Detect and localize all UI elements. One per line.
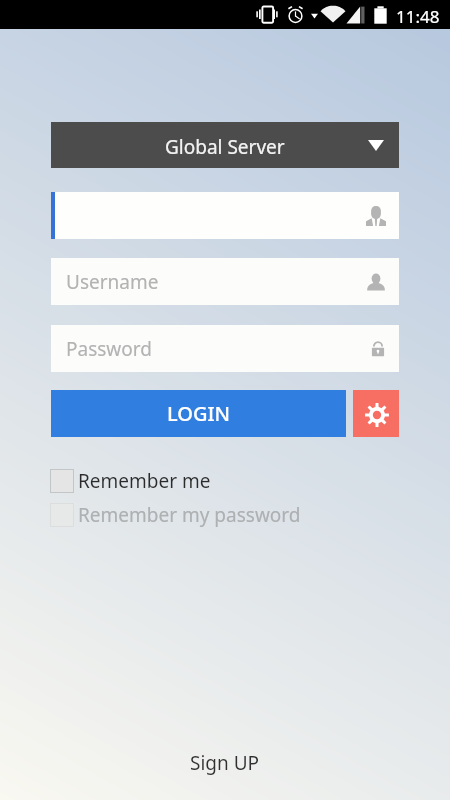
button[interactable]: Username — [51, 258, 399, 305]
button[interactable]: Sign UP — [184, 744, 266, 782]
staticText: Remember my password — [78, 502, 301, 528]
staticText: LOGIN — [167, 400, 231, 427]
staticText: Password — [66, 336, 152, 362]
staticText: Username — [66, 269, 159, 295]
staticText: Remember me — [78, 468, 211, 494]
staticText: Sign UP — [190, 750, 260, 776]
button[interactable]: Global Server — [51, 122, 399, 168]
staticText: 11:48 — [396, 5, 440, 28]
button[interactable]: Password — [51, 325, 399, 372]
button[interactable]: LOGIN — [51, 390, 346, 437]
button[interactable]: Settings — [353, 390, 399, 437]
button[interactable]: Remember my password — [50, 502, 301, 528]
button[interactable]: Remember me — [50, 468, 211, 494]
button[interactable] — [51, 192, 399, 239]
staticText: Global Server — [165, 134, 285, 160]
